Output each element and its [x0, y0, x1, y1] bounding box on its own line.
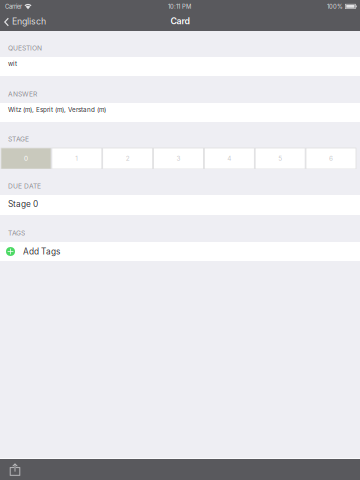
staticText: Stage 0: [8, 199, 38, 209]
staticText: Add Tags: [23, 246, 60, 256]
staticText: TAGS: [8, 229, 25, 237]
button[interactable]: Stage 0: [0, 195, 360, 215]
staticText: 5: [278, 155, 282, 162]
staticText: 3: [176, 155, 180, 162]
button[interactable]: Witz (m), Esprit (m), Verstand (m): [0, 103, 360, 122]
button[interactable]: 4: [204, 148, 254, 169]
staticText: DUE DATE: [8, 182, 41, 190]
button[interactable]: Englisch: [0, 13, 52, 31]
staticText: 6: [329, 155, 333, 162]
staticText: 2: [126, 155, 130, 162]
button[interactable]: 0: [1, 148, 51, 169]
staticText: QUESTION: [8, 44, 42, 52]
button[interactable]: wit: [0, 57, 360, 76]
button[interactable]: 6: [306, 148, 356, 169]
staticText: STAGE: [8, 135, 29, 143]
staticText: 1: [75, 155, 78, 162]
button[interactable]: 2: [103, 148, 153, 169]
button[interactable]: 5: [255, 148, 305, 169]
staticText: Card: [170, 16, 189, 26]
staticText: Carrier: [5, 3, 22, 10]
staticText: 100%: [327, 3, 343, 10]
button[interactable]: 3: [153, 148, 203, 169]
staticText: ANSWER: [8, 90, 37, 98]
staticText: Witz (m), Esprit (m), Verstand (m): [8, 106, 106, 114]
staticText: wit: [8, 60, 17, 68]
staticText: 0: [24, 155, 28, 162]
staticText: Englisch: [12, 16, 46, 26]
button[interactable]: 1: [52, 148, 102, 169]
staticText: 10:11 PM: [168, 3, 191, 10]
button[interactable]: Add Tags: [0, 242, 360, 261]
button[interactable]: Share: [5, 459, 25, 480]
staticText: 4: [227, 155, 231, 162]
